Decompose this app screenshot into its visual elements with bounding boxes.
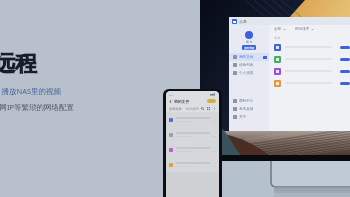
staticText: 公网IP等繁琐的网络配置	[0, 102, 75, 112]
staticText: 9:41	[169, 93, 174, 96]
staticText: 我的文件	[174, 99, 190, 104]
staticText: 意见反馈	[239, 107, 254, 112]
button[interactable]	[166, 142, 219, 157]
button[interactable]: 我的文件	[229, 53, 269, 61]
button[interactable]	[166, 157, 219, 172]
staticText: 时间排序	[295, 27, 310, 32]
button[interactable]: 帮助中心	[229, 97, 269, 105]
button[interactable]	[269, 65, 350, 77]
button[interactable]	[269, 77, 350, 89]
staticText: 关于	[239, 115, 247, 120]
other: More	[213, 107, 216, 110]
staticText: 我的文件	[239, 55, 254, 60]
staticText: 全部	[274, 27, 282, 32]
button[interactable]	[166, 127, 219, 142]
staticText: 传输列表	[239, 63, 254, 68]
other: Search	[201, 107, 204, 110]
other: Grid view	[207, 107, 210, 110]
button[interactable]: 意见反馈	[229, 105, 269, 113]
staticText: 远程	[0, 50, 37, 78]
staticText: ▄▄▌	[210, 93, 216, 96]
button[interactable]	[207, 99, 216, 103]
other: Back	[169, 100, 172, 103]
button[interactable]: 关于	[229, 113, 269, 121]
button[interactable]	[269, 53, 350, 65]
staticText: 云盘	[239, 19, 247, 24]
staticText: 立即升级	[244, 46, 255, 49]
button[interactable]: 时间排序	[295, 27, 314, 32]
button[interactable]	[340, 46, 350, 49]
button[interactable]	[340, 82, 350, 85]
staticText: 时间排序	[186, 107, 199, 111]
button[interactable]: 立即升级	[242, 45, 256, 50]
button[interactable]: 全部	[274, 27, 286, 32]
button[interactable]	[269, 41, 350, 53]
staticText: 个人设置	[239, 71, 254, 76]
button[interactable]: 传输列表	[229, 61, 269, 69]
button[interactable]	[340, 70, 350, 73]
button[interactable]	[166, 112, 219, 127]
staticText: 帮助中心	[239, 99, 254, 104]
staticText: ，播放NAS里的视频	[0, 86, 62, 96]
button[interactable]	[340, 58, 350, 61]
staticText: 账号	[246, 40, 253, 44]
button[interactable]: 个人设置	[229, 69, 269, 77]
staticText: 今天	[274, 36, 281, 40]
staticText: 全部文件	[169, 107, 182, 111]
